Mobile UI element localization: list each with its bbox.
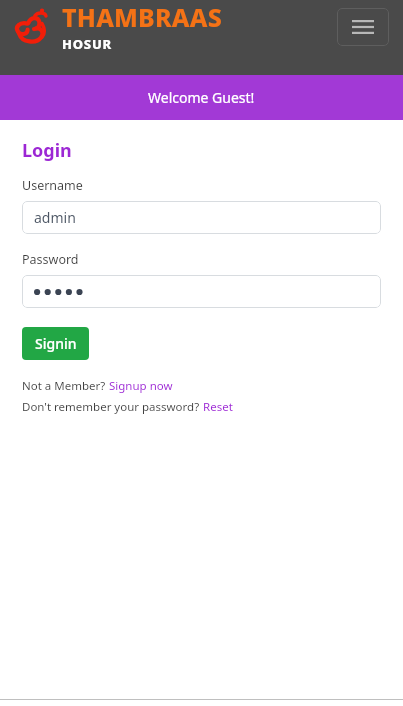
button[interactable]: Signup now [109, 378, 173, 394]
button[interactable]: Om logo [14, 0, 222, 53]
button[interactable]: Signin [22, 327, 89, 360]
staticText: THAMBRAAS [62, 0, 222, 34]
staticText: Login [22, 138, 72, 163]
button[interactable]: Menu [337, 8, 389, 46]
button[interactable]: admin [22, 201, 381, 234]
staticText: Reset [203, 399, 233, 415]
staticText: Not a Member? [22, 378, 109, 394]
staticText: Password [22, 251, 79, 268]
staticText: HOSUR [62, 35, 113, 53]
button[interactable] [22, 275, 381, 308]
staticText: admin [34, 208, 76, 227]
button[interactable]: Reset [203, 399, 233, 415]
staticText: Signup now [109, 378, 173, 394]
staticText: Welcome Guest! [148, 88, 255, 107]
staticText: Username [22, 177, 83, 194]
other: Om logo [14, 10, 54, 44]
staticText: Signin [35, 334, 77, 353]
staticText: Don't remember your password? [22, 399, 203, 415]
